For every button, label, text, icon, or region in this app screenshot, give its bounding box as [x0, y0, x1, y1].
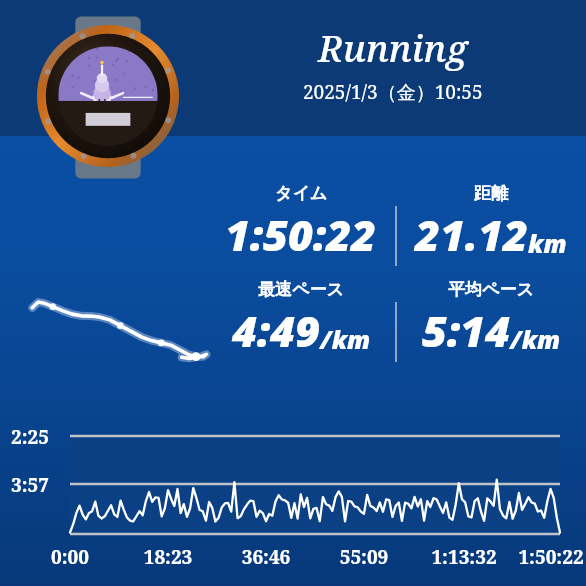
staticText: 1:50:22: [511, 544, 586, 570]
button[interactable]: 距離: [396, 183, 586, 264]
staticText: 距離: [474, 183, 508, 204]
staticText: 55:09: [324, 544, 404, 570]
staticText: 1:13:32: [424, 544, 504, 570]
button[interactable]: Running: [200, 22, 586, 105]
staticText: 平均ペース: [448, 279, 534, 300]
staticText: Running: [318, 22, 468, 72]
staticText: 5:14: [422, 301, 510, 360]
staticText: /km: [320, 322, 371, 356]
staticText: 3:57: [11, 472, 49, 498]
staticText: 21.12: [415, 205, 528, 264]
staticText: 最速ペース: [258, 279, 344, 300]
staticText: km: [528, 226, 567, 260]
staticText: 36:46: [226, 544, 306, 570]
staticText: /km: [510, 322, 561, 356]
button[interactable]: 最速ペース: [206, 279, 396, 360]
staticText: 2:25: [11, 424, 49, 450]
staticText: 0:00: [30, 544, 110, 570]
staticText: 18:23: [128, 544, 208, 570]
staticText: 2025/1/3（金）10:55: [303, 79, 483, 105]
button[interactable]: タイム: [206, 183, 396, 264]
staticText: 4:49: [232, 301, 320, 360]
button[interactable]: 平均ペース: [396, 279, 586, 360]
button[interactable]: Route map: [0, 248, 215, 363]
staticText: タイム: [275, 183, 328, 204]
button[interactable]: Watch face photo: [34, 16, 182, 176]
staticText: 1:50:22: [225, 205, 377, 264]
